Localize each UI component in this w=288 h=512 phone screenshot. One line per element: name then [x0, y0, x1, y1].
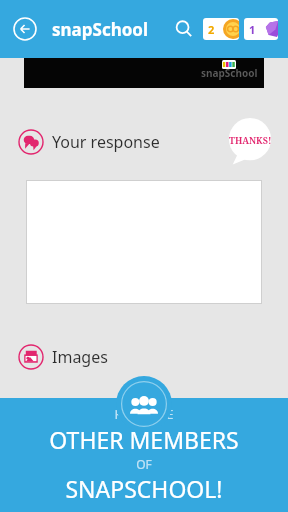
button[interactable]: 2: [203, 18, 239, 40]
staticText: 1: [249, 22, 256, 37]
staticText: snapSchool: [52, 18, 149, 41]
staticText: THANKS!: [229, 134, 272, 146]
staticText: Your response: [52, 131, 160, 153]
button[interactable]: Back: [10, 14, 40, 44]
button[interactable]: [26, 180, 262, 304]
button[interactable]: Search: [171, 16, 197, 42]
staticText: HELP THE: [114, 405, 174, 423]
staticText: snapSchool: [201, 66, 258, 80]
button[interactable]: 1: [244, 18, 278, 40]
staticText: SNAPSCHOOL!: [65, 473, 223, 504]
staticText: OTHER MEMBERS: [49, 424, 239, 455]
button[interactable]: Members: [116, 376, 172, 432]
button[interactable]: [0, 398, 288, 512]
staticText: 2: [208, 22, 215, 37]
staticText: Images: [52, 346, 108, 368]
staticText: OF: [136, 456, 152, 472]
